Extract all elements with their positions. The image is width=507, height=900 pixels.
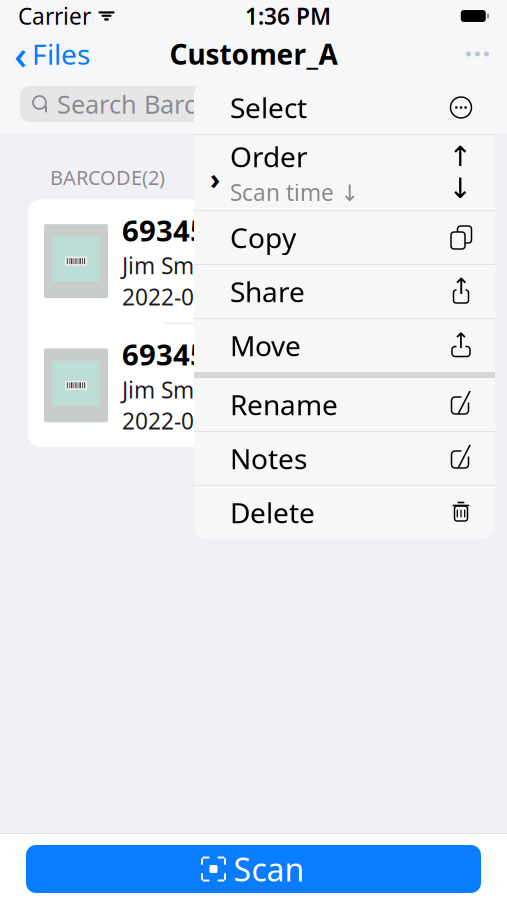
staticText: Notes xyxy=(230,440,307,477)
staticText: ↑ xyxy=(452,328,470,353)
staticText: ↑↓ xyxy=(448,141,471,204)
button[interactable]: Notes xyxy=(194,432,495,485)
staticText: Select xyxy=(230,89,307,126)
button[interactable]: Move xyxy=(194,319,495,372)
button[interactable]: Rename xyxy=(194,378,495,431)
button[interactable]: More options xyxy=(448,32,507,76)
button[interactable]: Order xyxy=(194,135,495,210)
staticText: Search Barcode xyxy=(57,87,241,121)
staticText: Order xyxy=(230,138,308,175)
staticText: 69345678901 xyxy=(122,211,309,250)
staticText: 1:36 PM xyxy=(245,1,331,31)
staticText: Share xyxy=(230,273,305,310)
staticText: 2022-07-18 xyxy=(122,406,240,436)
staticText: Scan time ↓ xyxy=(230,177,359,207)
button[interactable]: 69345678901 xyxy=(28,200,479,323)
staticText: BARCODE(2) xyxy=(50,164,165,191)
staticText: › xyxy=(210,160,220,197)
button[interactable]: Share xyxy=(194,265,495,318)
staticText: ╱ xyxy=(458,445,470,468)
button[interactable]: ‹ xyxy=(0,32,104,76)
staticText: Copy xyxy=(230,219,296,256)
staticText: Move xyxy=(230,327,301,364)
button[interactable]: 69345678901 xyxy=(28,324,479,447)
staticText: Carrier xyxy=(18,1,91,31)
button[interactable]: Delete xyxy=(194,486,495,539)
staticText: ‹ xyxy=(14,27,27,80)
staticText: Customer_A xyxy=(169,35,337,73)
staticText: Delete xyxy=(230,494,315,531)
staticText: Scan xyxy=(233,848,304,890)
button[interactable]: Copy xyxy=(194,211,495,264)
staticText: Rename xyxy=(230,386,338,423)
button[interactable]: Select xyxy=(194,81,495,134)
staticText: Files xyxy=(32,35,90,73)
staticText: Jim Smith xyxy=(122,250,222,281)
staticText: 69345678901 xyxy=(122,335,309,374)
button[interactable]: Scan xyxy=(26,845,481,893)
staticText: ↑ xyxy=(451,274,470,299)
staticText: ╱ xyxy=(458,391,470,414)
staticText: Jim Smith xyxy=(122,375,222,405)
staticText: 2022-07-18 xyxy=(122,282,240,312)
